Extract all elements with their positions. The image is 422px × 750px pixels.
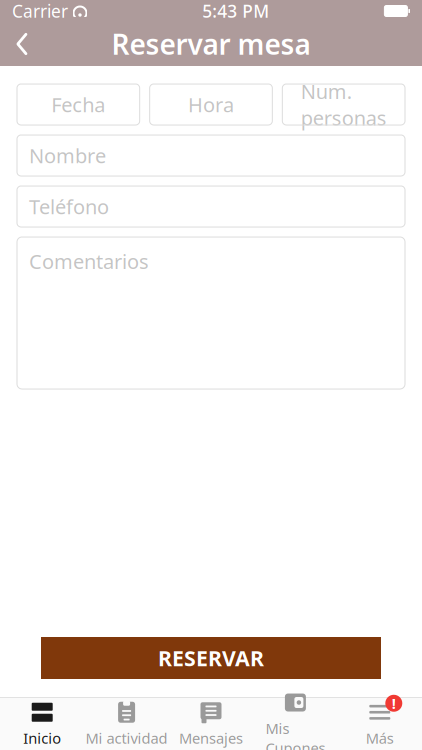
staticText: Carrier [12, 0, 68, 22]
staticText: Fecha [51, 91, 105, 118]
staticText: Inicio [23, 728, 61, 748]
button[interactable]: Teléfono [17, 186, 405, 227]
button[interactable]: Hora [150, 84, 272, 125]
staticText: ! [392, 693, 396, 713]
staticText: Mi actividad [86, 728, 168, 748]
button[interactable]: Back [0, 22, 44, 66]
button[interactable]: RESERVAR [41, 637, 381, 679]
button[interactable]: Mi actividad [84, 698, 169, 750]
staticText: Reservar mesa [111, 25, 310, 63]
button[interactable]: Comentarios [17, 237, 405, 389]
staticText: Num. personas [301, 78, 387, 131]
button[interactable]: ! [338, 698, 422, 750]
button[interactable]: Fecha [17, 84, 140, 125]
staticText: Mensajes [179, 728, 243, 748]
staticText: Comentarios [29, 248, 149, 275]
staticText: 5:43 PM [202, 0, 269, 22]
staticText: RESERVAR [158, 644, 264, 672]
staticText: Nombre [29, 142, 106, 169]
staticText: Hora [188, 91, 234, 118]
button[interactable]: Nombre [17, 135, 405, 176]
staticText: Mis Cupones [265, 718, 325, 750]
button[interactable]: Inicio [0, 698, 84, 750]
button[interactable]: Mensajes [169, 698, 253, 750]
staticText: Teléfono [29, 193, 109, 220]
button[interactable]: Mis Cupones [253, 698, 338, 750]
button[interactable]: Num. personas [282, 84, 405, 125]
staticText: Más [366, 728, 394, 748]
